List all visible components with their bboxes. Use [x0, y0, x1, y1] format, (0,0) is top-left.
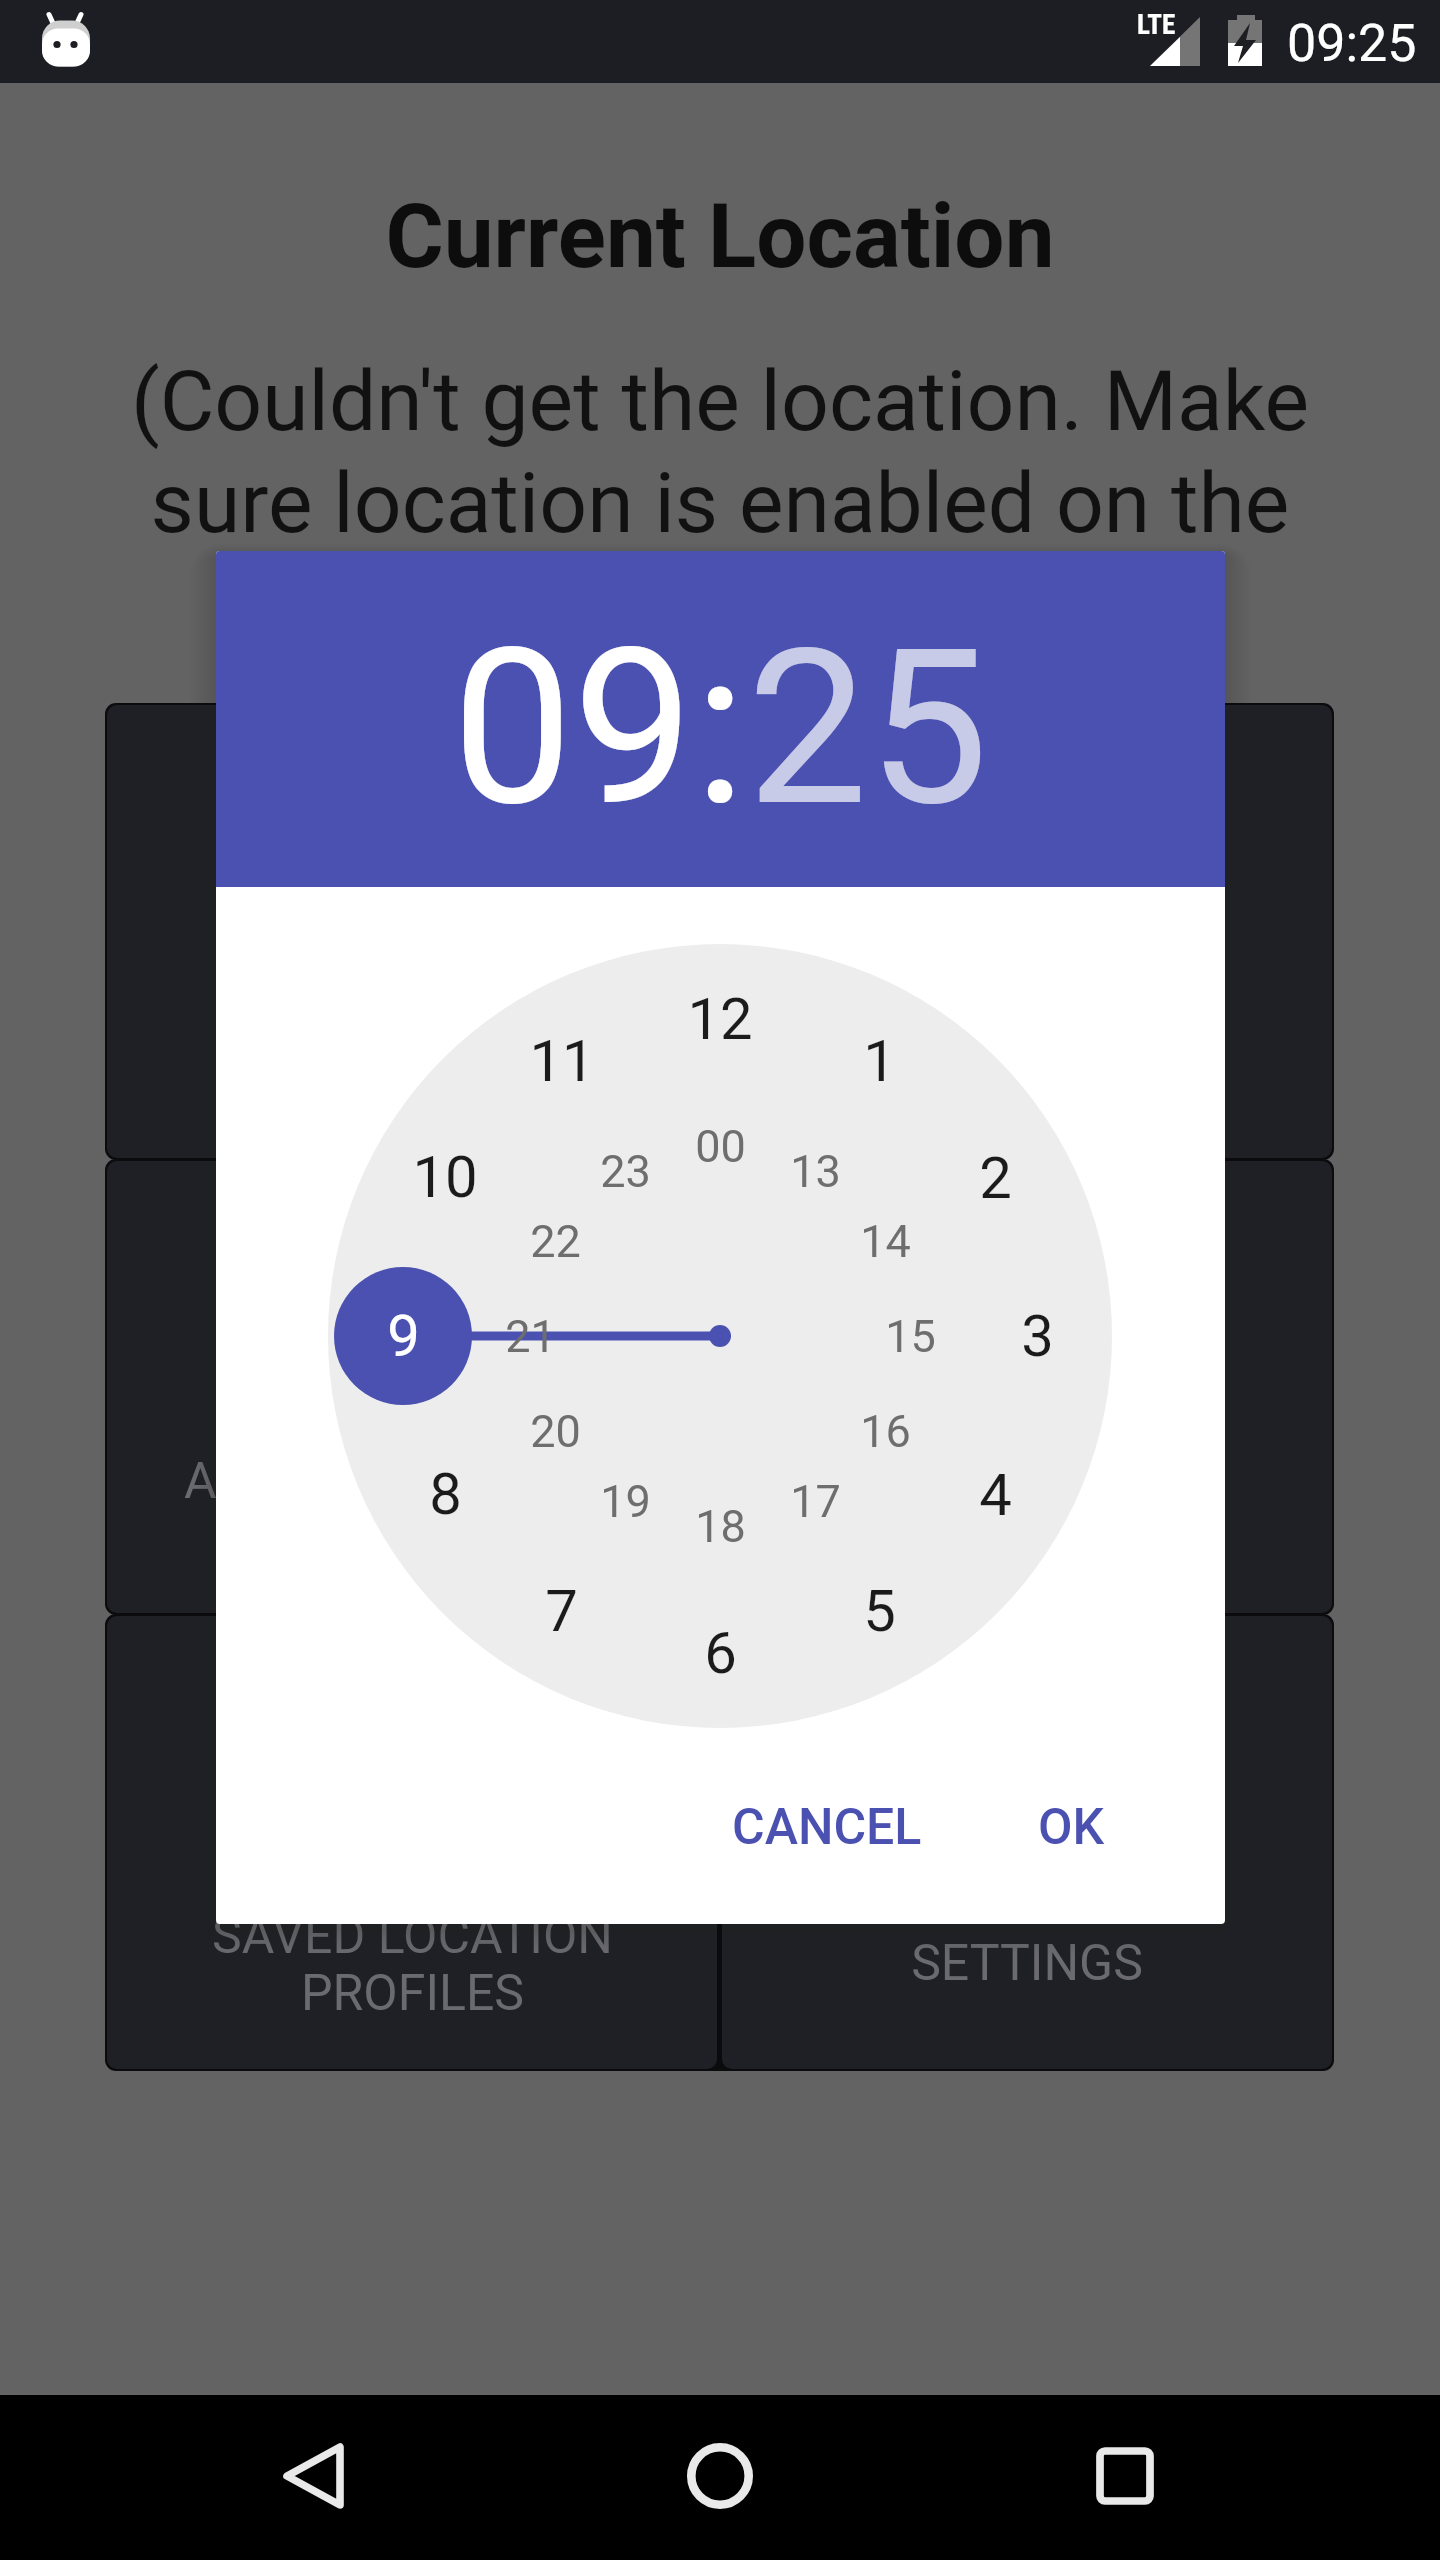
button[interactable]: 2 [940, 1134, 1050, 1222]
button[interactable]: 16 [830, 1387, 940, 1475]
button[interactable]: 13 [760, 1127, 870, 1215]
staticText: 23 [600, 1145, 651, 1198]
button[interactable]: 00 [665, 1102, 775, 1190]
staticText: 2 [979, 1144, 1012, 1212]
staticText: 11 [529, 1027, 595, 1095]
button[interactable]: 17 [760, 1457, 870, 1545]
staticText: : [694, 603, 747, 855]
button[interactable]: 9 [348, 1292, 458, 1380]
button[interactable]: 5 [824, 1567, 934, 1655]
staticText: SAVED LOCATION PROFILES [212, 1907, 613, 2022]
button[interactable]: 1 [824, 1017, 934, 1105]
button[interactable]: 21 [475, 1292, 585, 1380]
button[interactable]: 11 [507, 1017, 617, 1105]
button[interactable]: 19 [570, 1457, 680, 1545]
button[interactable]: 7 [506, 1567, 616, 1655]
button[interactable]: Back [235, 2396, 395, 2556]
staticText: 7 [545, 1577, 578, 1645]
staticText: 14 [860, 1215, 911, 1268]
staticText: SETTINGS [911, 1934, 1143, 1993]
button[interactable]: 3 [982, 1292, 1092, 1380]
staticText: 8 [429, 1460, 462, 1528]
button[interactable]: 18 [665, 1482, 775, 1570]
staticText: 1 [863, 1027, 896, 1095]
button[interactable]: CANCEL [700, 1772, 954, 1883]
button[interactable]: 6 [665, 1609, 775, 1697]
button[interactable]: 25 [747, 603, 989, 855]
button[interactable]: SAVED LOCATION PROFILES [107, 1616, 717, 2069]
button[interactable] [107, 705, 1332, 1158]
staticText: (Couldn't get the location. Make sure lo… [120, 352, 1320, 654]
staticText: 20 [530, 1405, 581, 1458]
button[interactable]: Home [640, 2396, 800, 2556]
staticText: Current Location [385, 184, 1055, 288]
button[interactable]: 22 [500, 1197, 610, 1285]
button[interactable]: 20 [500, 1387, 610, 1475]
staticText: 09:25 [1287, 13, 1417, 74]
button[interactable]: ADD CURRENT LOCATION TO PROFILE [107, 1161, 1332, 1613]
staticText: CANCEL [732, 1798, 922, 1857]
staticText: 22 [530, 1215, 581, 1268]
staticText: 19 [600, 1475, 651, 1528]
staticText: 3 [1021, 1302, 1054, 1370]
staticText: 6 [704, 1619, 737, 1687]
staticText: 9 [387, 1302, 420, 1370]
button[interactable]: SETTINGS [722, 1616, 1332, 2069]
staticText: 16 [860, 1405, 911, 1458]
staticText: 15 [885, 1310, 936, 1363]
staticText: 00 [695, 1120, 746, 1173]
staticText: 10 [412, 1143, 478, 1211]
button[interactable]: 23 [570, 1127, 680, 1215]
button[interactable]: OK [1006, 1772, 1137, 1883]
staticText: 5 [863, 1577, 896, 1645]
button[interactable]: 09 [452, 603, 694, 855]
button[interactable]: 15 [855, 1292, 965, 1380]
staticText: 12 [687, 985, 753, 1053]
staticText: 21 [505, 1310, 556, 1363]
button[interactable]: 12 [665, 975, 775, 1063]
staticText: 17 [790, 1475, 841, 1528]
staticText: OK [1038, 1798, 1105, 1857]
button[interactable]: Recent apps [1045, 2396, 1205, 2556]
staticText: ADD CURRENT LOCATION TO PROFILE [184, 1452, 1042, 1511]
button[interactable]: 10 [390, 1133, 500, 1221]
button[interactable]: 8 [390, 1450, 500, 1538]
staticText: LTE [1137, 9, 1176, 41]
button[interactable]: 4 [940, 1451, 1050, 1539]
staticText: 13 [790, 1145, 841, 1198]
button[interactable]: 14 [830, 1197, 940, 1285]
staticText: 18 [695, 1500, 746, 1553]
staticText: 4 [979, 1461, 1012, 1529]
